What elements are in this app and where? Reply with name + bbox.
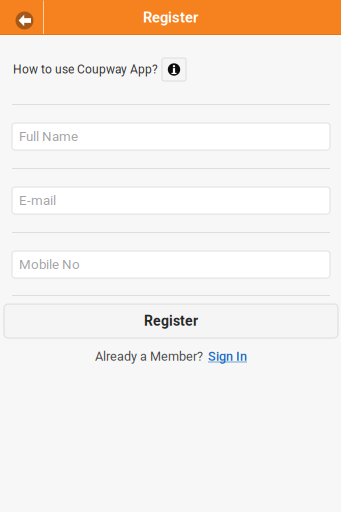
button[interactable]: Register xyxy=(4,304,338,338)
staticText: E-mail xyxy=(19,193,56,208)
staticText: Register xyxy=(143,9,198,26)
staticText: Full Name xyxy=(19,129,78,144)
staticText: Mobile No xyxy=(19,257,80,272)
button[interactable]: Sign In xyxy=(208,349,247,364)
button[interactable]: How to use Coupway App information xyxy=(162,58,186,81)
staticText: Sign In xyxy=(208,349,247,364)
staticText: How to use Coupway App? xyxy=(13,62,158,77)
button[interactable]: Back xyxy=(0,0,43,34)
staticText: Already a Member? xyxy=(95,349,203,364)
staticText: Register xyxy=(144,313,198,329)
